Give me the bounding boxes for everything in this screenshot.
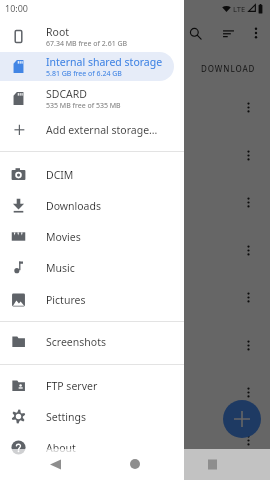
button[interactable]: Item options <box>236 238 260 262</box>
button[interactable]: Item options <box>236 190 260 214</box>
button[interactable]: Downloads <box>0 190 184 221</box>
button[interactable]: Item options <box>236 333 260 357</box>
button[interactable]: Movies <box>0 221 184 252</box>
staticText: DCIM <box>46 168 74 182</box>
button[interactable]: DCIM <box>0 159 184 190</box>
staticText: Add external storage… <box>46 123 158 137</box>
button[interactable]: Search <box>182 20 208 46</box>
staticText: 5.81 GB free of 6.24 GB <box>46 69 122 79</box>
button[interactable]: Music <box>0 252 184 283</box>
staticText: Root <box>46 25 70 39</box>
staticText: LTE <box>233 4 246 14</box>
staticText: Movies <box>46 230 81 244</box>
button[interactable]: Add <box>223 400 261 438</box>
button[interactable]: Screenshots <box>0 326 184 357</box>
button[interactable]: Item options <box>236 380 260 404</box>
button[interactable]: DOWNLOAD <box>197 59 260 78</box>
button[interactable]: Item options <box>236 143 260 167</box>
button[interactable]: Add external storage… <box>0 114 184 145</box>
button[interactable]: SDCARD <box>0 83 184 114</box>
staticText: Internal shared storage <box>46 55 163 69</box>
button[interactable]: Settings <box>0 401 184 432</box>
button[interactable]: Root <box>0 21 184 52</box>
staticText: 535 MB free of 535 MB <box>46 101 121 111</box>
staticText: Settings <box>46 410 86 424</box>
button[interactable]: Home <box>122 451 148 477</box>
staticText: Music <box>46 261 75 275</box>
button[interactable]: Sort <box>215 20 241 46</box>
staticText: SDCARD <box>46 87 87 101</box>
staticText: FTP server <box>46 379 98 393</box>
staticText: 67.34 MB free of 2.61 GB <box>46 39 128 49</box>
button[interactable]: Item options <box>236 95 260 119</box>
button[interactable]: Back <box>42 451 68 477</box>
button[interactable]: Item options <box>236 285 260 309</box>
button[interactable]: FTP server <box>0 370 184 401</box>
button[interactable]: Pictures <box>0 284 184 315</box>
button[interactable]: Item options <box>236 428 260 452</box>
button[interactable]: More options <box>243 20 269 46</box>
staticText: Downloads <box>46 199 101 213</box>
button[interactable]: Internal shared storage <box>0 51 184 82</box>
button[interactable]: Recents <box>199 451 225 477</box>
staticText: About <box>46 441 76 455</box>
staticText: Pictures <box>46 293 86 307</box>
button[interactable]: About <box>0 432 184 463</box>
staticText: DOWNLOAD <box>201 63 256 74</box>
staticText: 10:00 <box>5 2 29 14</box>
staticText: Screenshots <box>46 335 106 349</box>
